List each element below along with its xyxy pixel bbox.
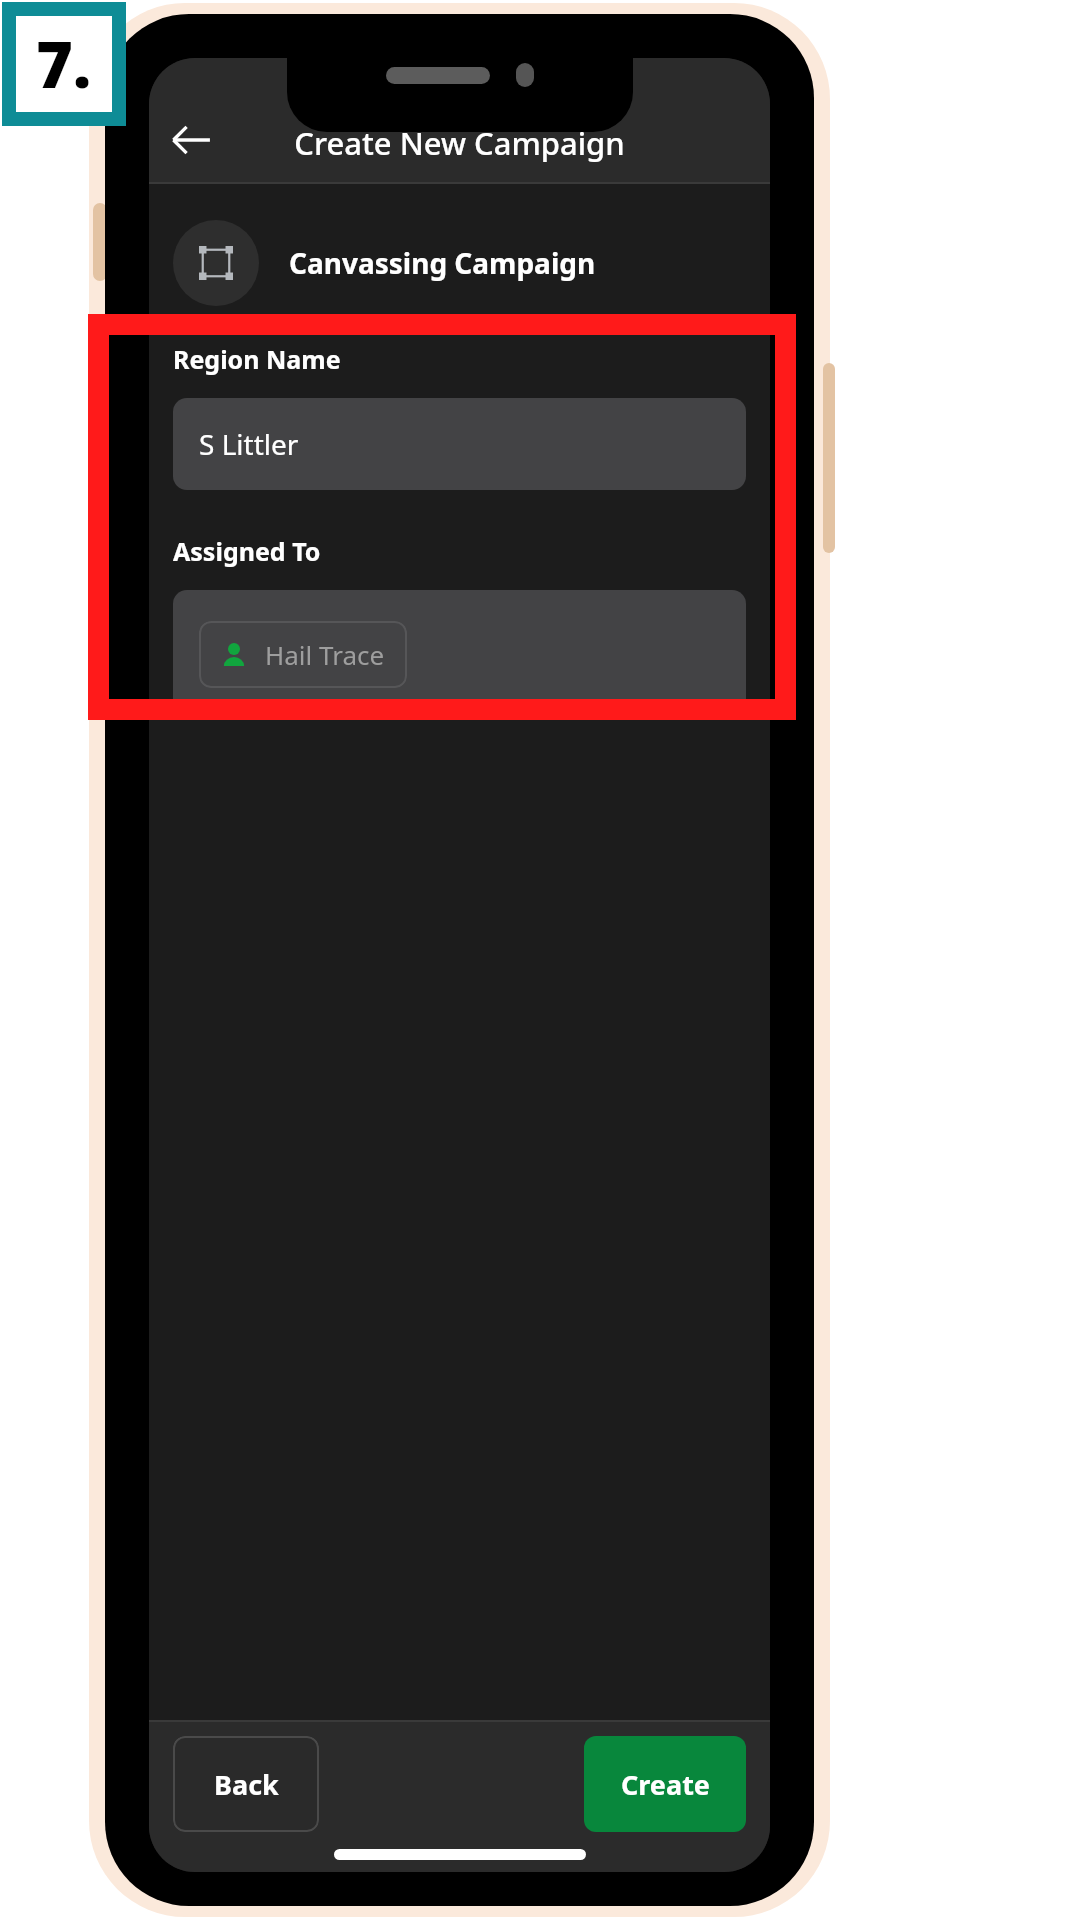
button[interactable]: Hail Trace bbox=[199, 621, 407, 688]
staticText: Back bbox=[214, 1766, 279, 1803]
button[interactable]: Create bbox=[584, 1736, 746, 1832]
staticText: Hail Trace bbox=[265, 637, 385, 672]
staticText: Create New Campaign bbox=[294, 122, 625, 164]
staticText: Canvassing Campaign bbox=[289, 244, 596, 282]
staticText: 7. bbox=[36, 21, 92, 107]
staticText: Region Name bbox=[173, 342, 341, 376]
button[interactable]: Canvassing Campaign bbox=[173, 220, 746, 306]
button[interactable]: Back bbox=[155, 104, 227, 176]
button[interactable]: S Littler bbox=[173, 398, 746, 490]
staticText: S Littler bbox=[199, 425, 299, 463]
staticText: Create bbox=[621, 1766, 710, 1803]
button[interactable]: Back bbox=[173, 1736, 319, 1832]
staticText: Assigned To bbox=[173, 534, 321, 568]
button[interactable]: Hail Trace bbox=[173, 590, 746, 718]
